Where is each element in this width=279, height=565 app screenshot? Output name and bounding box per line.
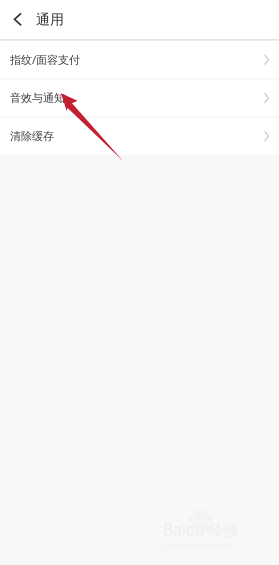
button[interactable]: 音效与通知 (0, 79, 279, 117)
button[interactable]: 清除缓存 (0, 118, 279, 155)
staticText: 指纹/面容支付 (10, 52, 80, 67)
staticText: Baidu 经验 (163, 519, 238, 540)
staticText: 通用 (36, 11, 64, 28)
button[interactable]: Back (0, 0, 36, 39)
staticText: 音效与通知 (10, 91, 65, 105)
staticText: 清除缓存 (10, 129, 54, 143)
button[interactable]: 指纹/面容支付 (0, 41, 279, 78)
